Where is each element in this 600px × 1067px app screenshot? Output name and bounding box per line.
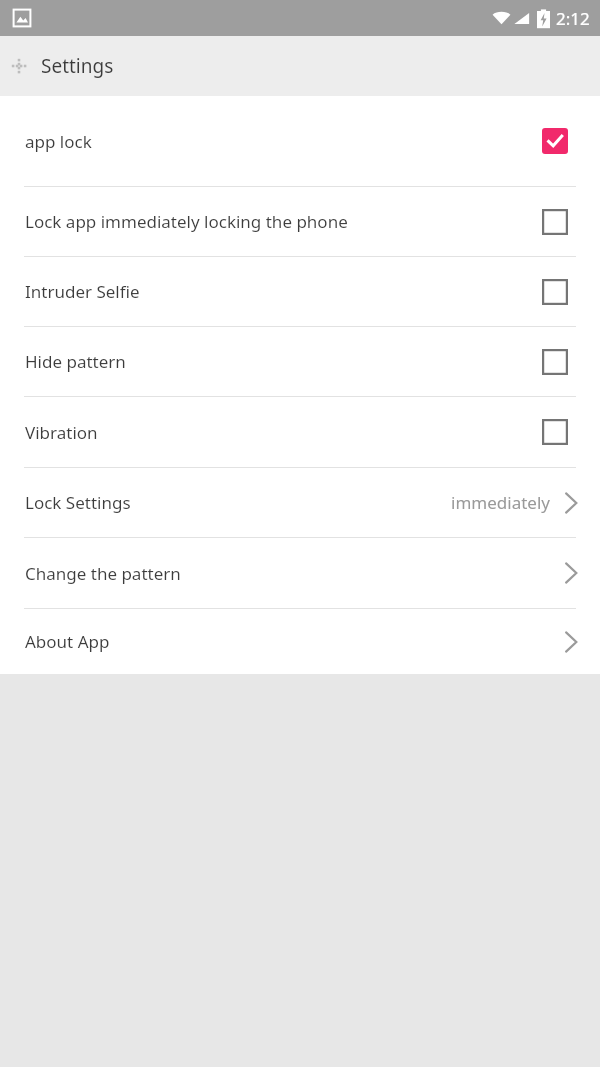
button[interactable]: app lock <box>0 96 600 186</box>
staticText: app lock <box>25 130 542 153</box>
staticText: Change the pattern <box>25 562 564 585</box>
button[interactable]: Change the pattern <box>0 538 600 608</box>
staticText: About App <box>25 630 564 653</box>
staticText: Hide pattern <box>25 350 542 373</box>
staticText: Lock Settings <box>25 491 451 514</box>
button[interactable]: Vibration <box>0 397 600 467</box>
button[interactable]: Lock app immediately locking the phone <box>0 187 600 256</box>
button[interactable]: About App <box>0 609 600 674</box>
button[interactable]: Intruder Selfie <box>0 257 600 326</box>
staticText: Vibration <box>25 421 542 444</box>
staticText: immediately <box>451 491 550 514</box>
staticText: Settings <box>41 53 114 79</box>
button[interactable]: Move <box>11 58 27 74</box>
staticText: 2:12 <box>556 7 590 30</box>
staticText: Intruder Selfie <box>25 280 542 303</box>
button[interactable]: Hide pattern <box>0 327 600 396</box>
button[interactable]: Lock Settings <box>0 468 600 537</box>
staticText: Lock app immediately locking the phone <box>25 210 542 233</box>
